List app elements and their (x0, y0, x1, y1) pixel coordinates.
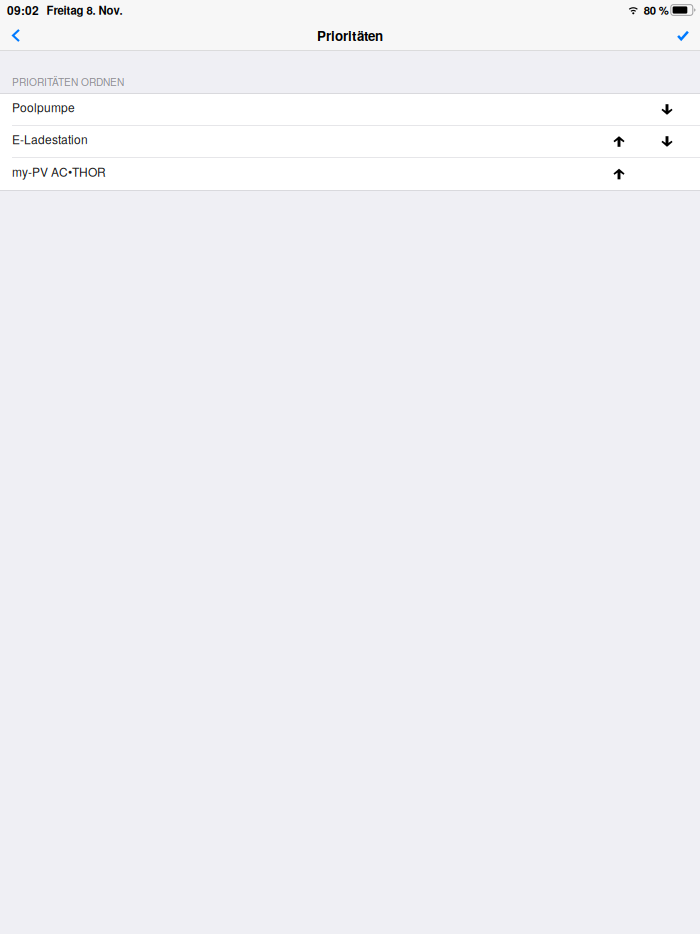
staticText: Poolpumpe (12, 98, 75, 116)
staticText: 80 % (644, 2, 669, 18)
staticText: Prioritäten (317, 26, 383, 45)
staticText: E-Ladestation (12, 130, 88, 148)
staticText: Freitag 8. Nov. (46, 2, 122, 18)
button[interactable]: Poolpumpe nach unten (643, 93, 691, 125)
staticText: 09:02 (7, 1, 39, 19)
button[interactable]: E-Ladestation nach oben (595, 125, 643, 157)
button[interactable]: Fertig (666, 20, 700, 51)
button[interactable]: E-Ladestation nach unten (643, 125, 691, 157)
staticText: PRIORITÄTEN ORDNEN (12, 74, 124, 89)
button[interactable]: my-PV AC•THOR nach oben (595, 158, 643, 190)
button[interactable]: Zurück (0, 20, 32, 51)
staticText: my-PV AC•THOR (12, 163, 106, 180)
